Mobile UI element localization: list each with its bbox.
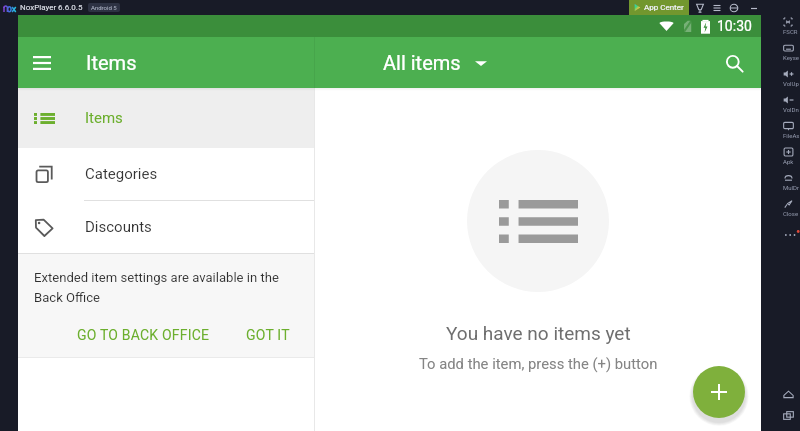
staticText: You have no items yet (446, 322, 631, 344)
button[interactable]: Open navigation drawer (18, 39, 66, 87)
staticText: Items (85, 109, 123, 127)
button[interactable]: App Center (634, 0, 684, 15)
staticText: To add the item, press the (+) button (419, 355, 658, 372)
button[interactable]: Window control (695, 3, 705, 13)
button[interactable]: VolUp (783, 69, 800, 95)
staticText: Apk Ins (783, 158, 800, 165)
button[interactable]: Recents (783, 410, 794, 421)
button[interactable]: Window control (749, 3, 759, 13)
button[interactable]: GO TO BACK OFFICE (69, 322, 218, 348)
button[interactable]: VolDn (783, 95, 800, 121)
staticText: App Center (644, 3, 684, 12)
button[interactable]: Add item (693, 366, 745, 418)
staticText: NoxPlayer 6.6.0.5 (20, 3, 83, 12)
staticText: Extended item settings are available in … (34, 270, 279, 305)
button[interactable]: Discounts (18, 201, 314, 253)
staticText: FileAssi (783, 132, 800, 139)
staticText: VolUp (783, 80, 799, 87)
button[interactable]: Close a (783, 199, 800, 225)
staticText: Items (86, 51, 137, 74)
staticText: VolDn (783, 106, 799, 113)
staticText: Keyset (783, 54, 800, 61)
button[interactable]: Search (710, 39, 758, 87)
button[interactable]: Items (18, 88, 314, 148)
staticText: Categories (85, 165, 158, 183)
staticText: MulDriv (783, 184, 800, 191)
button[interactable]: Window control (729, 3, 739, 13)
staticText: All items (383, 51, 461, 74)
button[interactable]: Apk Ins (783, 147, 800, 173)
button[interactable]: All items (383, 51, 487, 74)
staticText: GO TO BACK OFFICE (77, 327, 210, 343)
staticText: 10:30 (717, 18, 752, 34)
button[interactable]: GOT IT (238, 322, 298, 348)
button[interactable]: FileAssi (783, 121, 800, 147)
button[interactable]: Window control (712, 3, 722, 13)
button[interactable]: More (783, 230, 799, 240)
button[interactable]: MulDriv (783, 173, 800, 199)
button[interactable]: Categories (18, 148, 314, 200)
button[interactable]: FSCR (783, 17, 800, 43)
staticText: GOT IT (246, 327, 290, 343)
staticText: FSCR (783, 28, 798, 35)
button[interactable]: Keyset (783, 43, 800, 69)
staticText: Android 5 (91, 4, 117, 11)
button[interactable]: Home (783, 389, 794, 400)
staticText: Discounts (85, 218, 152, 236)
staticText: Close a (783, 210, 800, 217)
